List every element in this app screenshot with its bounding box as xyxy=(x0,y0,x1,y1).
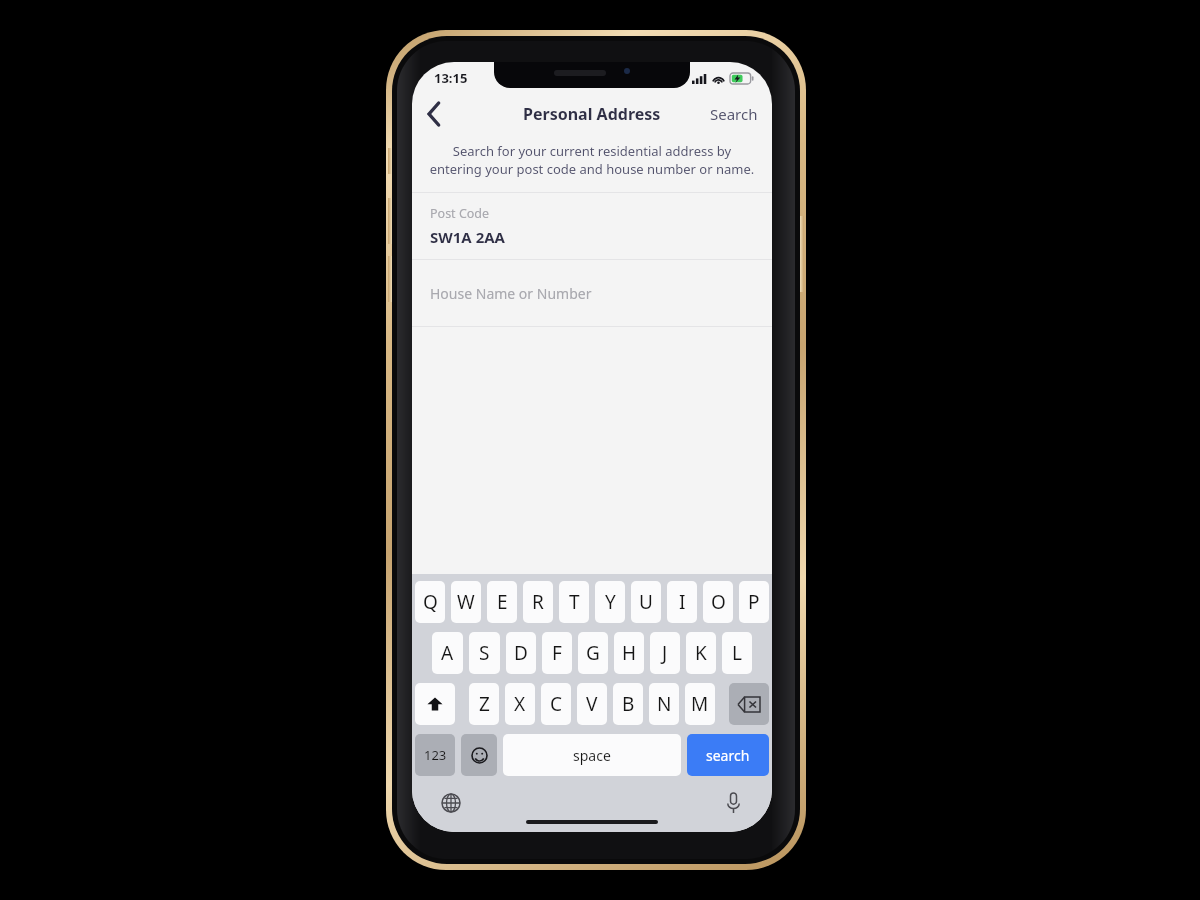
staticText: Search for your current residential addr… xyxy=(428,142,756,178)
button[interactable]: F xyxy=(542,632,572,674)
button[interactable]: M xyxy=(685,683,715,725)
button[interactable]: search xyxy=(687,734,769,776)
button[interactable]: W xyxy=(451,581,481,623)
staticText: Personal Address xyxy=(523,103,661,125)
staticText: M xyxy=(691,691,709,717)
button[interactable]: House Name or Number xyxy=(412,260,772,326)
staticText: O xyxy=(711,589,726,615)
button[interactable]: H xyxy=(614,632,644,674)
button[interactable]: C xyxy=(541,683,571,725)
button[interactable]: V xyxy=(577,683,607,725)
button[interactable]: J xyxy=(650,632,680,674)
staticText: U xyxy=(639,589,653,615)
button[interactable]: K xyxy=(686,632,716,674)
button[interactable]: space xyxy=(503,734,681,776)
button[interactable]: Shift xyxy=(415,683,455,725)
button[interactable]: Change keyboard xyxy=(436,788,466,818)
staticText: L xyxy=(732,640,742,666)
staticText: D xyxy=(514,640,528,666)
staticText: T xyxy=(569,589,580,615)
staticText: W xyxy=(457,589,475,615)
staticText: 13:15 xyxy=(434,69,468,87)
button[interactable]: U xyxy=(631,581,661,623)
button[interactable]: Search xyxy=(696,96,772,132)
button[interactable]: R xyxy=(523,581,553,623)
staticText: R xyxy=(532,589,544,615)
staticText: I xyxy=(679,589,686,615)
staticText: S xyxy=(479,640,490,666)
button[interactable]: P xyxy=(739,581,769,623)
button[interactable]: L xyxy=(722,632,752,674)
staticText: SW1A 2AA xyxy=(430,227,505,247)
staticText: G xyxy=(586,640,600,666)
staticText: C xyxy=(550,691,563,717)
button[interactable]: I xyxy=(667,581,697,623)
staticText: A xyxy=(441,640,454,666)
button[interactable]: Dictate xyxy=(718,788,748,818)
button[interactable]: Emoji xyxy=(461,734,497,776)
button[interactable]: T xyxy=(559,581,589,623)
staticText: E xyxy=(497,589,508,615)
button[interactable]: Post Code xyxy=(412,193,772,259)
button[interactable]: G xyxy=(578,632,608,674)
button[interactable]: N xyxy=(649,683,679,725)
button[interactable]: E xyxy=(487,581,517,623)
staticText: V xyxy=(586,691,598,717)
staticText: H xyxy=(622,640,637,666)
button[interactable]: Z xyxy=(469,683,499,725)
staticText: Q xyxy=(423,589,438,615)
button[interactable]: 123 xyxy=(415,734,455,776)
staticText: F xyxy=(552,640,562,666)
button[interactable]: Y xyxy=(595,581,625,623)
staticText: P xyxy=(748,589,760,615)
staticText: J xyxy=(662,640,668,666)
button[interactable]: Back xyxy=(412,92,456,136)
button[interactable]: Q xyxy=(415,581,445,623)
button[interactable]: Backspace xyxy=(729,683,769,725)
button[interactable]: A xyxy=(432,632,463,674)
staticText: Search xyxy=(710,104,758,124)
staticText: N xyxy=(657,691,672,717)
staticText: search xyxy=(706,746,750,765)
staticText: House Name or Number xyxy=(430,284,592,303)
staticText: Y xyxy=(605,589,616,615)
button[interactable]: X xyxy=(505,683,535,725)
staticText: 123 xyxy=(424,746,447,764)
staticText: B xyxy=(622,691,635,717)
staticText: Post Code xyxy=(430,205,490,222)
button[interactable]: O xyxy=(703,581,733,623)
staticText: K xyxy=(695,640,707,666)
button[interactable]: B xyxy=(613,683,643,725)
staticText: X xyxy=(514,691,526,717)
button[interactable]: D xyxy=(506,632,536,674)
staticText: Z xyxy=(479,691,490,717)
button[interactable]: S xyxy=(469,632,500,674)
staticText: space xyxy=(573,746,611,765)
